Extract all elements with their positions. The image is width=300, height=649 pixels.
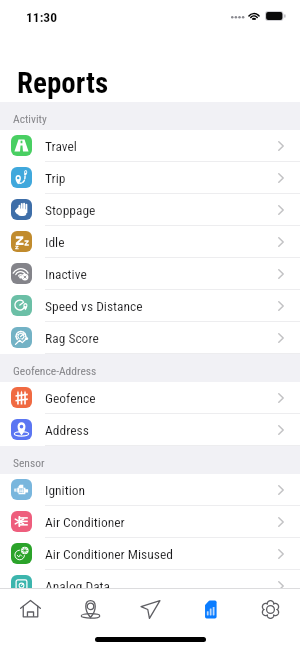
button[interactable]: Reports [180,589,240,629]
button[interactable]: Analog Data [0,570,300,602]
button[interactable]: Ignition [0,474,300,506]
staticText: Speed vs Distance [45,298,143,314]
button[interactable]: Settings [240,589,300,629]
button[interactable]: Rag Score [0,322,300,354]
button[interactable]: Air Conditioner Misused [0,538,300,570]
staticText: Sensor [13,456,45,469]
staticText: Travel [45,138,77,154]
staticText: Analog Data [45,578,111,594]
staticText: Stoppage [45,202,96,218]
button[interactable]: Idle [0,226,300,258]
button[interactable]: Live location [60,589,120,629]
button[interactable]: Trip [0,162,300,194]
button[interactable]: Speed vs Distance [0,290,300,322]
staticText: Idle [45,234,65,250]
button[interactable]: Navigate [120,589,180,629]
staticText: Air Conditioner Misused [45,546,173,562]
staticText: Activity [13,112,47,125]
staticText: Geofence-Address [13,364,97,377]
staticText: 11:30 [26,9,57,25]
button[interactable]: Stoppage [0,194,300,226]
staticText: Geofence [45,390,96,406]
button[interactable]: Geofence [0,382,300,414]
button[interactable]: Inactive [0,258,300,290]
staticText: Rag Score [45,330,99,346]
button[interactable]: Air Conditioner [0,506,300,538]
staticText: Address [45,422,89,438]
button[interactable]: Address [0,414,300,446]
button[interactable]: Travel [0,130,300,162]
staticText: Reports [17,66,109,100]
button[interactable]: Home [0,589,60,629]
staticText: Air Conditioner [45,514,125,530]
staticText: Ignition [45,482,86,498]
staticText: Trip [45,170,66,186]
staticText: Inactive [45,266,87,282]
